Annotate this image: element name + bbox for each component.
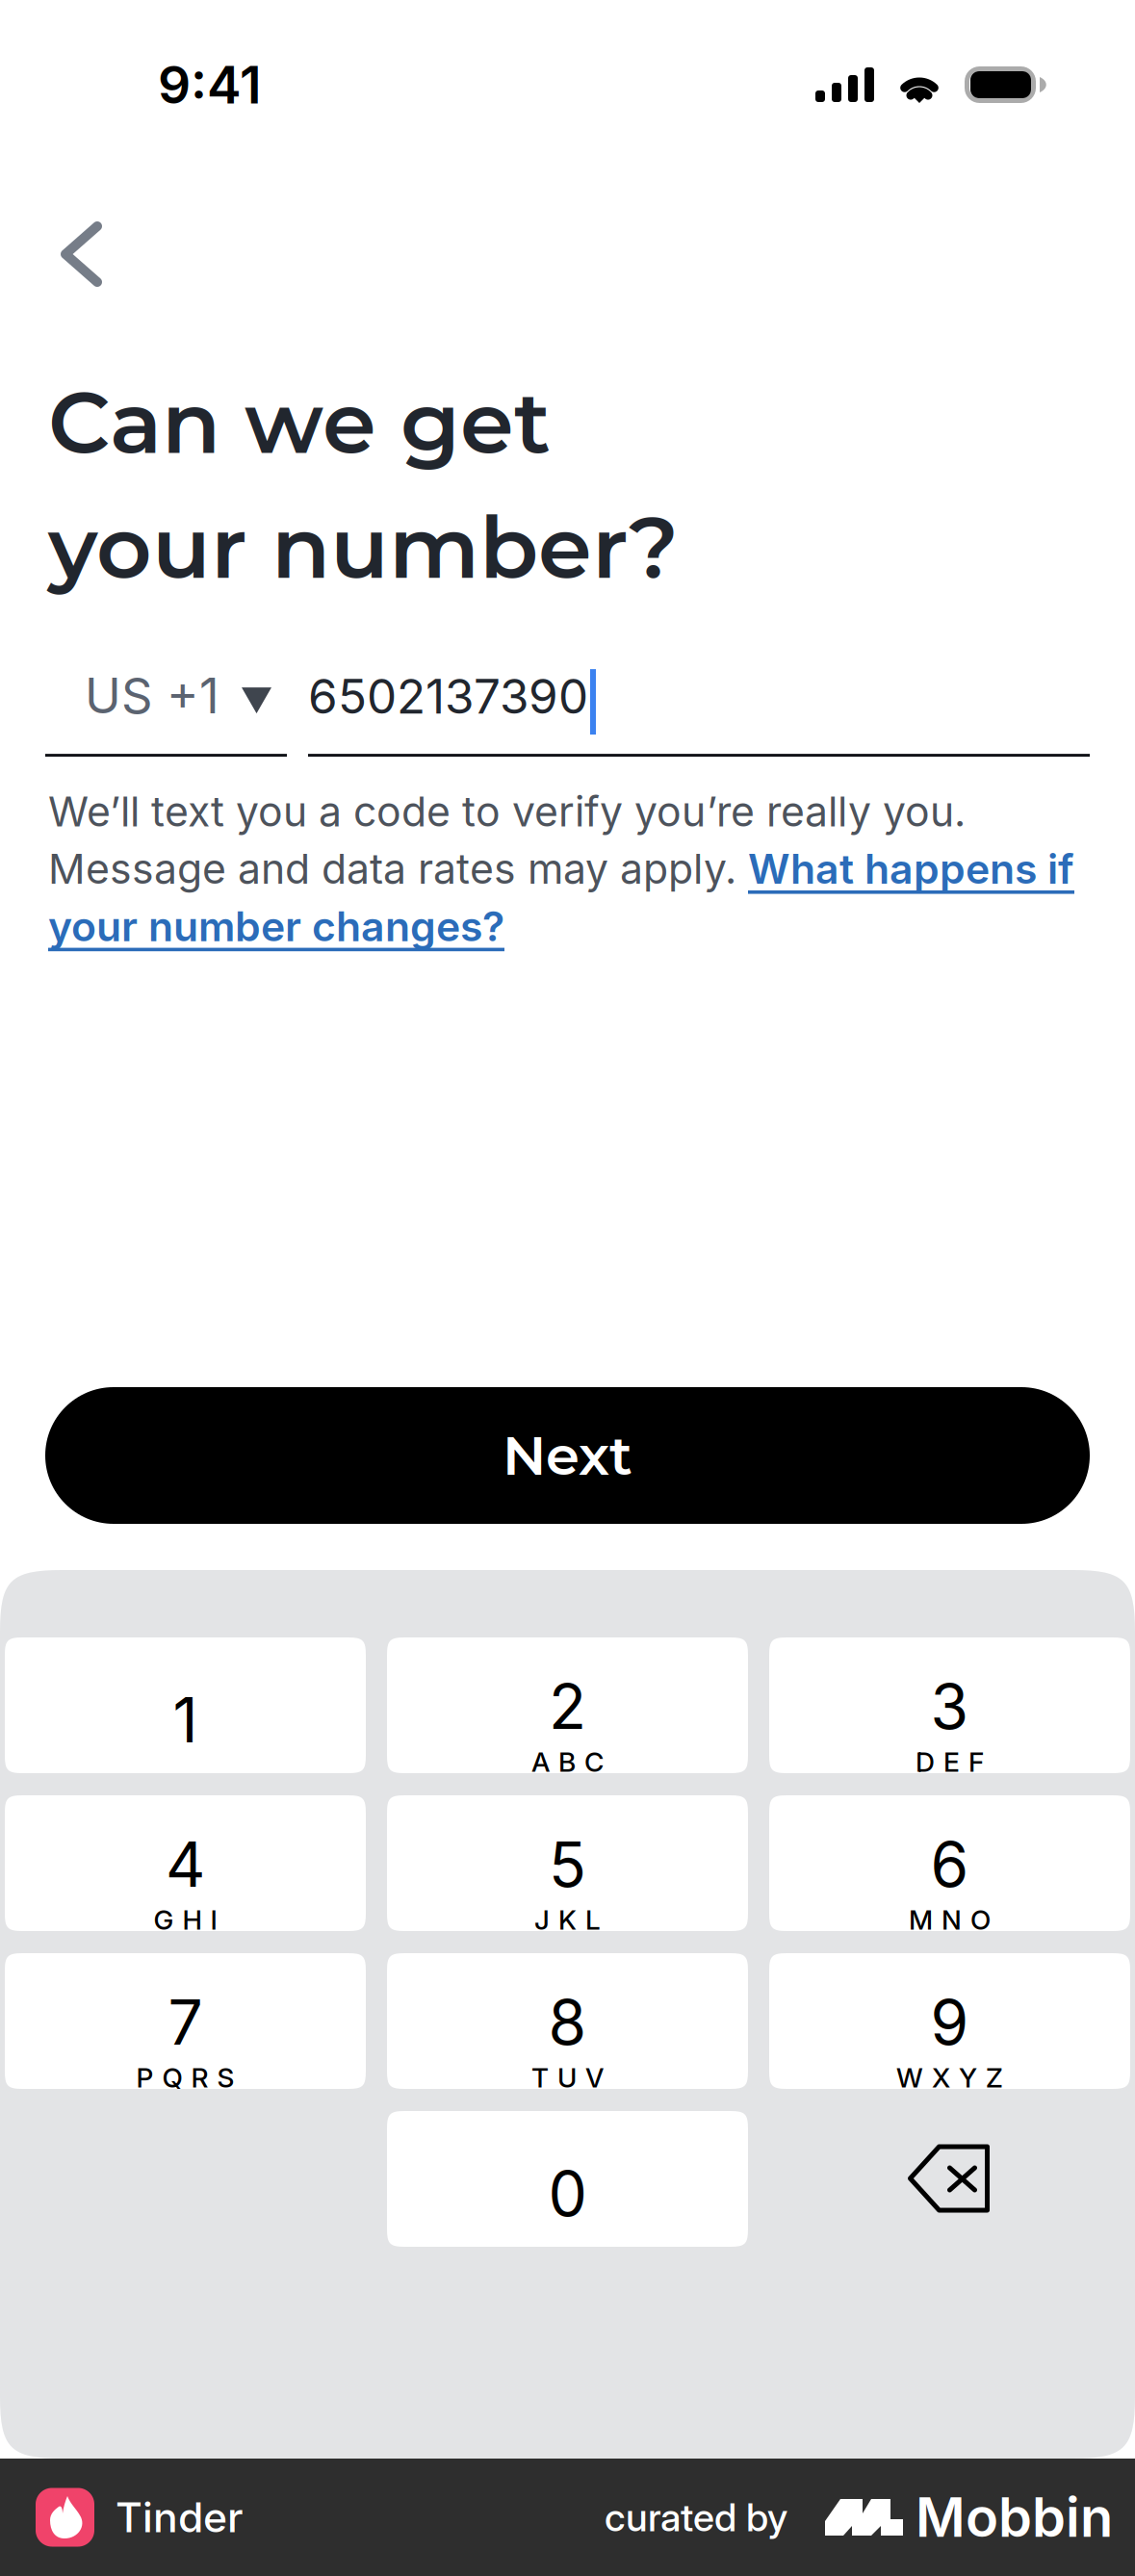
staticText: 7 — [168, 1985, 203, 2059]
staticText: F — [968, 1746, 984, 1778]
staticText: L — [585, 1904, 601, 1936]
staticText: US +1 — [85, 666, 219, 725]
staticText: A — [531, 1746, 550, 1778]
button[interactable]: 4 — [5, 1795, 366, 1931]
staticText: Next — [503, 1423, 632, 1488]
staticText: your number? — [48, 495, 679, 600]
staticText: Can we get — [48, 370, 551, 474]
staticText: Y — [959, 2061, 977, 2094]
staticText: D — [916, 1746, 935, 1778]
button[interactable]: 7 — [5, 1953, 366, 2089]
staticText: B — [558, 1746, 576, 1778]
staticText: P — [136, 2061, 154, 2094]
staticText: N — [942, 1904, 962, 1936]
staticText: 6 — [930, 1827, 969, 1902]
staticText: 1 — [173, 1683, 198, 1757]
staticText: S — [217, 2061, 234, 2094]
button[interactable]: 3 — [769, 1637, 1130, 1773]
button[interactable]: 8 — [387, 1953, 748, 2089]
staticText: M — [909, 1904, 933, 1936]
button[interactable]: 0 — [387, 2111, 748, 2247]
staticText: 6502137390 — [308, 667, 588, 725]
staticText: C — [584, 1746, 604, 1778]
staticText: 9 — [930, 1985, 969, 2059]
staticText: V — [585, 2061, 604, 2094]
staticText: 9:41 — [158, 54, 262, 116]
staticText: E — [943, 1746, 960, 1778]
button[interactable]: Delete — [769, 2111, 1130, 2247]
staticText: 0 — [548, 2156, 587, 2231]
button[interactable]: Country code, US plus 1 — [45, 666, 287, 757]
staticText: 5 — [549, 1827, 586, 1902]
button[interactable]: 6 — [769, 1795, 1130, 1931]
staticText: U — [557, 2061, 577, 2094]
staticText: 3 — [930, 1669, 969, 1744]
button[interactable]: 9 — [769, 1953, 1130, 2089]
staticText: K — [558, 1904, 577, 1936]
button[interactable]: Next — [45, 1387, 1090, 1524]
staticText: O — [970, 1904, 991, 1936]
button[interactable]: 5 — [387, 1795, 748, 1931]
staticText: X — [932, 2061, 950, 2094]
staticText: G — [154, 1904, 174, 1936]
staticText: I — [210, 1904, 217, 1936]
staticText: J — [534, 1904, 550, 1936]
staticText: 4 — [166, 1827, 205, 1902]
button[interactable]: Back — [46, 208, 116, 300]
staticText: H — [182, 1904, 202, 1936]
button[interactable]: 2 — [387, 1637, 748, 1773]
staticText: T — [531, 2061, 549, 2094]
staticText: curated by — [605, 2494, 787, 2541]
button[interactable]: We’ll text you a code to verify you’re r… — [48, 787, 1090, 951]
staticText: Mobbin — [916, 2485, 1113, 2550]
staticText: 8 — [548, 1985, 587, 2059]
staticText: W — [896, 2061, 923, 2094]
button[interactable]: 1 — [5, 1637, 366, 1773]
staticText: Q — [162, 2061, 182, 2094]
staticText: 2 — [549, 1669, 586, 1744]
staticText: Z — [986, 2061, 1003, 2094]
staticText: R — [191, 2061, 208, 2094]
staticText: We’ll text you a code to verify you’re r… — [48, 787, 1074, 951]
staticText: Tinder — [116, 2492, 244, 2542]
